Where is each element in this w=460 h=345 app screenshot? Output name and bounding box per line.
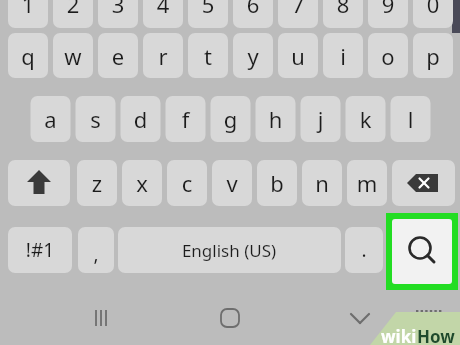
button[interactable]: Samsung keyboard with search key (0, 0, 460, 345)
